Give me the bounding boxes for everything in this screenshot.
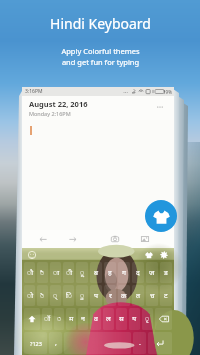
button[interactable]: Emoji [27, 250, 37, 260]
staticText: े [40, 291, 45, 301]
button[interactable]: Shift [24, 308, 40, 330]
staticText: ग [122, 268, 126, 278]
button[interactable]: क [118, 285, 130, 306]
button[interactable]: Backspace [155, 308, 172, 330]
staticText: 3:16PM [25, 88, 43, 95]
staticText: ी [66, 268, 72, 278]
button[interactable]: द [132, 262, 144, 283]
staticText: ड [164, 268, 168, 278]
button[interactable]: . [133, 332, 146, 354]
staticText: Hindi Keyboard [50, 14, 151, 33]
button[interactable]: Insert picture [130, 230, 160, 248]
staticText: ट [164, 291, 168, 301]
button[interactable]: ॉ [42, 308, 52, 330]
button[interactable]: े [37, 285, 48, 306]
button[interactable]: ह [104, 262, 116, 283]
button[interactable]: ै [37, 262, 48, 283]
button[interactable]: More options [154, 101, 166, 113]
staticText: . [139, 338, 141, 348]
staticText: ?123 [30, 340, 42, 347]
button[interactable]: र [104, 285, 116, 306]
button[interactable]: ब [90, 262, 102, 283]
button[interactable]: ल [103, 308, 114, 330]
button[interactable]: ू [76, 262, 88, 283]
button[interactable]: ा [50, 262, 61, 283]
staticText: ू [80, 268, 85, 278]
staticText: ो [27, 291, 33, 301]
button[interactable]: ?123 [24, 332, 47, 354]
staticText: ह [108, 268, 112, 278]
button[interactable]: च [146, 285, 158, 306]
button[interactable]: स [116, 308, 127, 330]
button[interactable]: Undo [28, 230, 58, 248]
staticText: ृ [145, 314, 150, 324]
button[interactable]: व [90, 308, 101, 330]
button[interactable]: न [78, 308, 88, 330]
button[interactable]: ु [76, 285, 88, 306]
staticText: र [109, 291, 112, 301]
staticText: ज [149, 268, 155, 278]
staticText: द [136, 268, 140, 278]
staticText: ौ [27, 268, 33, 278]
staticText: , [55, 338, 57, 348]
button[interactable]: ज [146, 262, 158, 283]
staticText: ब [94, 268, 98, 278]
button[interactable]: Enter [148, 332, 172, 354]
button[interactable]: , [49, 332, 62, 354]
staticText: न [81, 314, 85, 324]
button[interactable]: ौ [24, 262, 35, 283]
staticText: ॉ [44, 314, 50, 324]
staticText: च [150, 291, 155, 301]
button[interactable]: ् [50, 285, 61, 306]
staticText: ि [66, 291, 72, 301]
button[interactable]: Settings [158, 249, 169, 260]
staticText: ् [53, 291, 58, 301]
button[interactable]: ड [160, 262, 172, 283]
staticText: ु [80, 291, 85, 301]
button[interactable]: ी [63, 262, 74, 283]
button[interactable]: Space [64, 332, 131, 354]
staticText: 19% [163, 89, 172, 95]
staticText: य [132, 314, 137, 324]
staticText: Monday 2:16PM [29, 110, 71, 117]
staticText: त [136, 291, 140, 301]
staticText: ै [40, 268, 45, 278]
button[interactable]: ट [160, 285, 172, 306]
button[interactable]: ृ [142, 308, 153, 330]
staticText: स [119, 314, 124, 324]
staticText: प [94, 291, 98, 301]
staticText: August 22, 2016 [29, 99, 88, 109]
button[interactable]: ो [24, 285, 35, 306]
button[interactable]: म [66, 308, 76, 330]
staticText: ल [106, 314, 111, 324]
button[interactable]: प [90, 285, 102, 306]
button[interactable]: ग [118, 262, 130, 283]
button[interactable]: Change theme [145, 200, 177, 232]
button[interactable]: Themes [143, 249, 154, 260]
button[interactable]: य [129, 308, 140, 330]
staticText: ं [57, 314, 62, 324]
button[interactable]: Redo [58, 230, 88, 248]
staticText: ा [53, 268, 59, 278]
staticText: म [69, 314, 74, 324]
staticText: Apply Colorful themes and get fun for ty… [61, 46, 140, 67]
button[interactable]: ं [54, 308, 64, 330]
staticText: क [121, 291, 127, 301]
button[interactable]: त [132, 285, 144, 306]
staticText: व [94, 314, 98, 324]
button[interactable]: Camera [100, 230, 130, 248]
button[interactable]: ि [63, 285, 74, 306]
